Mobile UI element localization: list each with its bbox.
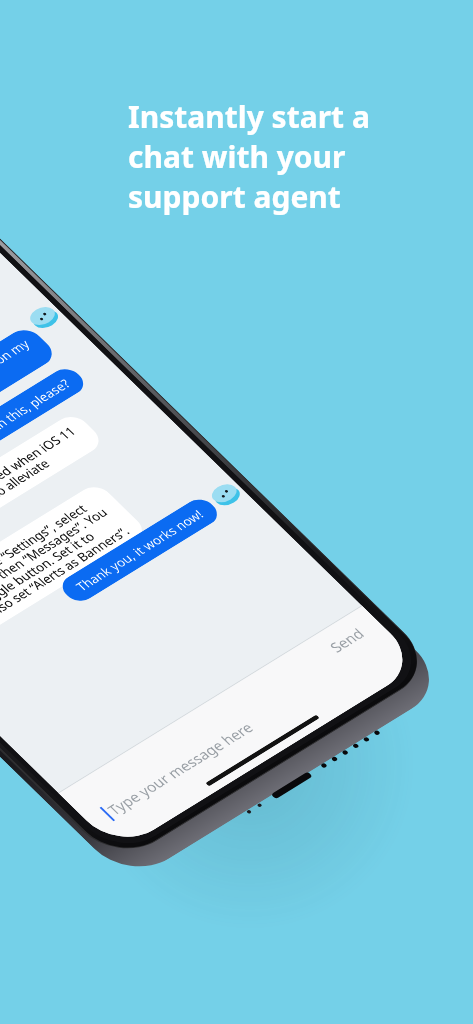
other: Support agent avatar xyxy=(207,480,244,509)
staticText: Sure! This bug was introduced when iOS 1… xyxy=(0,422,90,577)
other: Support agent avatar xyxy=(26,303,63,332)
button[interactable]: Type your message here xyxy=(59,659,316,831)
button[interactable]: Go to your phone “Settings”, select “Not… xyxy=(0,481,150,660)
button[interactable]: Can you help me with this, please? xyxy=(0,364,90,504)
staticText: Send xyxy=(325,624,369,656)
button[interactable]: Send xyxy=(304,606,391,670)
button[interactable]: Thank you, it works now! xyxy=(56,494,224,606)
staticText: Type your message here xyxy=(103,718,258,819)
staticText: I can't see the notifications on my lock… xyxy=(0,336,44,461)
button[interactable]: Sure! This bug was introduced when iOS 1… xyxy=(0,411,106,588)
staticText: Go to your phone “Settings”, select “Not… xyxy=(0,493,134,649)
staticText: Can you help me with this, please? xyxy=(0,375,74,493)
button[interactable]: I can't see the notifications on my lock… xyxy=(0,324,59,472)
staticText: Thank you, it works now! xyxy=(72,506,208,595)
staticText: Instantly start a chat with your support… xyxy=(128,96,370,217)
